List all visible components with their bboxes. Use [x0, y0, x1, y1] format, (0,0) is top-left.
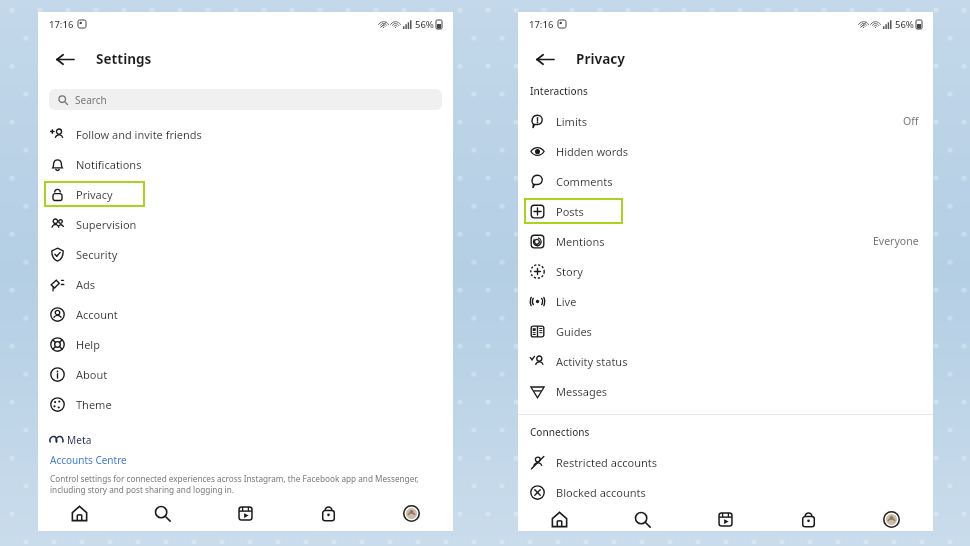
- staticText: Meta: [67, 433, 92, 447]
- button[interactable]: Reels: [204, 495, 287, 531]
- button[interactable]: Theme: [38, 389, 453, 419]
- button[interactable]: Account: [38, 299, 453, 329]
- staticText: Supervision: [76, 217, 137, 232]
- button[interactable]: Shop: [767, 507, 850, 531]
- button[interactable]: Reels: [684, 507, 767, 531]
- staticText: Account: [76, 307, 118, 322]
- staticText: Help: [76, 337, 100, 352]
- button[interactable]: Privacy: [38, 179, 453, 209]
- staticText: Search: [75, 93, 107, 107]
- button[interactable]: Story: [518, 256, 933, 286]
- staticText: Restricted accounts: [556, 455, 657, 470]
- staticText: 17:16: [49, 18, 74, 31]
- staticText: Mentions: [556, 234, 605, 249]
- button[interactable]: Guides: [518, 316, 933, 346]
- button[interactable]: Profile: [850, 507, 933, 531]
- staticText: Notifications: [76, 157, 142, 172]
- staticText: Security: [76, 247, 118, 262]
- button[interactable]: Search: [601, 507, 684, 531]
- button[interactable]: Back: [532, 46, 558, 72]
- staticText: Messages: [556, 384, 608, 399]
- button[interactable]: Activity status: [518, 346, 933, 376]
- staticText: Live: [556, 294, 577, 309]
- staticText: About: [76, 367, 108, 382]
- button[interactable]: Restricted accounts: [518, 447, 933, 477]
- button[interactable]: Follow and invite friends: [38, 119, 453, 149]
- staticText: 56%: [415, 18, 434, 31]
- button[interactable]: Posts: [518, 196, 933, 226]
- button[interactable]: Supervision: [38, 209, 453, 239]
- button[interactable]: Home: [38, 495, 121, 531]
- staticText: Privacy: [76, 187, 113, 202]
- staticText: Connections: [530, 425, 590, 439]
- button[interactable]: Mentions: [518, 226, 933, 256]
- button[interactable]: Blocked accounts: [518, 477, 933, 507]
- staticText: Theme: [76, 397, 112, 412]
- staticText: Ads: [76, 277, 96, 292]
- button[interactable]: Ads: [38, 269, 453, 299]
- staticText: 56%: [895, 18, 914, 31]
- button[interactable]: About: [38, 359, 453, 389]
- staticText: 17:16: [529, 18, 554, 31]
- staticText: Story: [556, 264, 583, 279]
- staticText: Privacy: [576, 50, 625, 68]
- staticText: Everyone: [873, 234, 919, 248]
- staticText: Off: [903, 114, 919, 128]
- button[interactable]: Messages: [518, 376, 933, 406]
- button[interactable]: Shop: [287, 495, 370, 531]
- button[interactable]: Search: [49, 89, 442, 110]
- staticText: Limits: [556, 114, 587, 129]
- staticText: Guides: [556, 324, 592, 339]
- button[interactable]: Back: [52, 46, 78, 72]
- staticText: Blocked accounts: [556, 485, 646, 500]
- button[interactable]: Hidden words: [518, 136, 933, 166]
- staticText: Interactions: [530, 84, 588, 98]
- button[interactable]: Search: [121, 495, 204, 531]
- staticText: Posts: [556, 204, 584, 219]
- button[interactable]: Profile: [370, 495, 453, 531]
- staticText: Accounts Centre: [50, 453, 127, 467]
- button[interactable]: Live: [518, 286, 933, 316]
- button[interactable]: Home: [518, 507, 601, 531]
- button[interactable]: Accounts Centre: [50, 453, 127, 467]
- staticText: Control settings for connected experienc…: [50, 473, 437, 495]
- staticText: Hidden words: [556, 144, 629, 159]
- button[interactable]: Comments: [518, 166, 933, 196]
- staticText: Settings: [96, 50, 152, 68]
- staticText: Activity status: [556, 354, 628, 369]
- button[interactable]: Help: [38, 329, 453, 359]
- staticText: Follow and invite friends: [76, 127, 202, 142]
- staticText: Comments: [556, 174, 613, 189]
- button[interactable]: Notifications: [38, 149, 453, 179]
- button[interactable]: Security: [38, 239, 453, 269]
- button[interactable]: Limits: [518, 106, 933, 136]
